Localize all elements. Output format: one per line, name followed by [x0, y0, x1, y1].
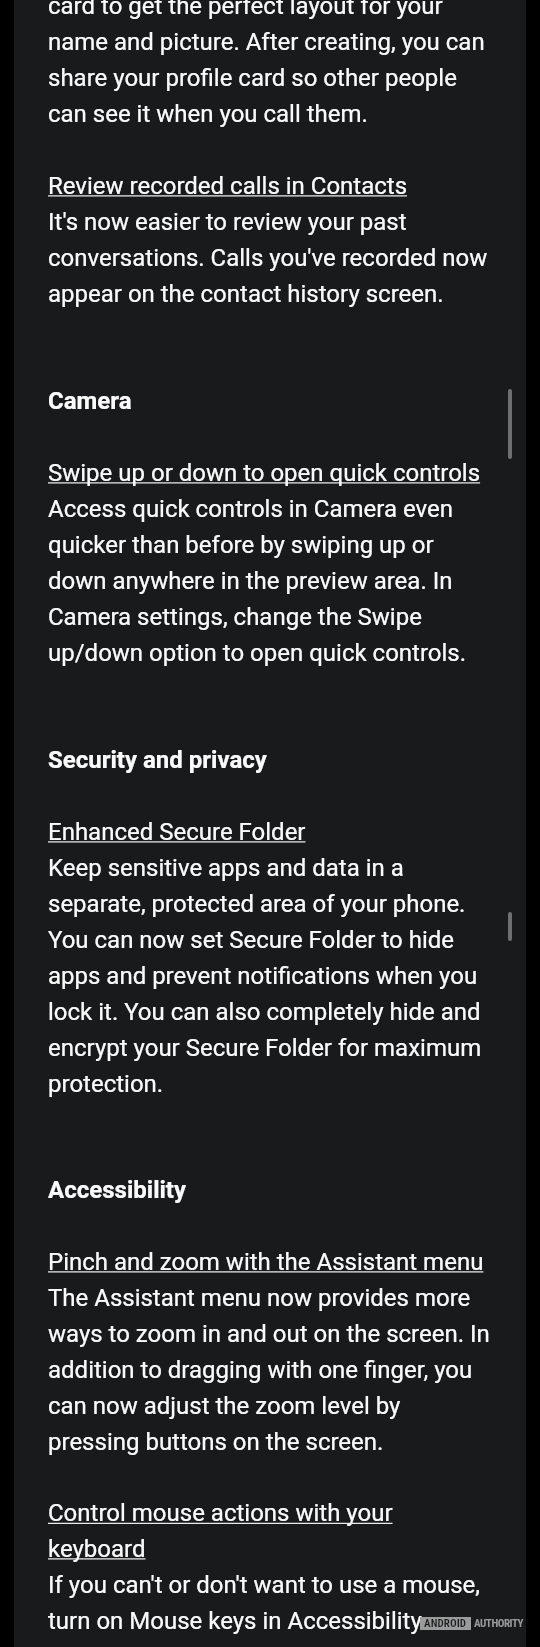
button[interactable]: Review recorded calls in Contacts — [48, 172, 492, 200]
button[interactable]: Control mouse actions with your keyboard — [48, 1499, 492, 1563]
button[interactable]: Swipe up or down to open quick controls — [48, 459, 492, 487]
staticText: ANDROID — [424, 1617, 467, 1630]
staticText: It's now easier to review your past conv… — [48, 208, 492, 308]
button[interactable]: Camera — [48, 387, 492, 415]
staticText: If you can't or don't want to use a mous… — [48, 1571, 492, 1647]
staticText: Keep sensitive apps and data in a separa… — [48, 854, 492, 1098]
button[interactable]: Enhanced Secure Folder — [48, 818, 492, 846]
button[interactable]: Accessibility — [48, 1176, 492, 1204]
staticText: AUTHORITY — [474, 1617, 524, 1630]
staticText: card to get the perfect layout for your … — [48, 0, 492, 128]
staticText: The Assistant menu now provides more way… — [48, 1284, 492, 1456]
button[interactable]: Security and privacy — [48, 746, 492, 774]
staticText: Access quick controls in Camera even qui… — [48, 495, 492, 667]
button[interactable]: Pinch and zoom with the Assistant menu — [48, 1248, 492, 1276]
